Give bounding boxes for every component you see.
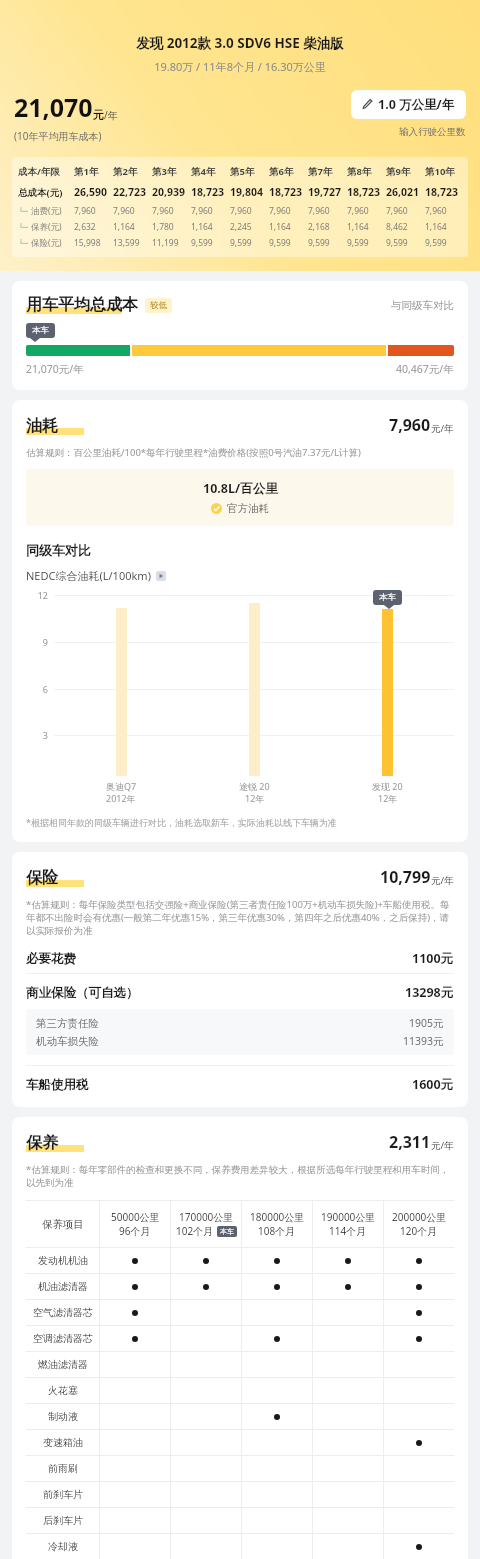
staticText: 7,960: [347, 205, 369, 217]
staticText: 7,960: [74, 205, 96, 217]
staticText: 26,590: [74, 185, 108, 199]
staticText: 总成本(元): [18, 186, 63, 199]
staticText: 6: [26, 683, 48, 695]
staticText: 与同级车对比: [391, 299, 454, 312]
staticText: 7,960: [191, 205, 213, 217]
staticText: 发现 20: [372, 780, 403, 792]
staticText: 前雨刷: [48, 1462, 78, 1475]
staticText: 2,311: [389, 1131, 431, 1153]
staticText: 170000公里: [179, 1210, 234, 1224]
staticText: 40,467元/年: [396, 362, 454, 376]
staticText: 7,960: [425, 205, 447, 217]
staticText: 1905元: [409, 1016, 444, 1030]
staticText: 油耗: [26, 416, 58, 436]
staticText: 21,070元/年: [26, 362, 84, 376]
staticText: 元/年: [431, 422, 454, 435]
staticText: 11,199: [152, 237, 179, 249]
staticText: 19,727: [308, 185, 342, 199]
staticText: 机油滤清器: [38, 1280, 88, 1293]
staticText: 10.8L/百公里: [203, 480, 278, 497]
button[interactable]: 1.0: [351, 90, 466, 119]
staticText: 万公里/年: [399, 96, 455, 113]
staticText: 1,164: [113, 221, 135, 233]
staticText: 120个月: [400, 1224, 438, 1238]
button[interactable]: 说明: [156, 571, 166, 581]
staticText: 7,960: [308, 205, 330, 217]
staticText: 21,070: [14, 90, 93, 124]
staticText: 8,462: [386, 221, 408, 233]
staticText: 必要花费: [26, 951, 76, 967]
staticText: 26,021: [386, 185, 420, 199]
staticText: 9: [26, 636, 48, 648]
staticText: 第9年: [386, 165, 411, 178]
staticText: 12年: [245, 792, 265, 804]
staticText: 9,599: [308, 237, 330, 249]
staticText: (10年平均用车成本): [14, 129, 102, 143]
staticText: 车船使用税: [26, 1077, 89, 1093]
staticText: 保险: [26, 868, 58, 888]
staticText: 第6年: [269, 165, 294, 178]
staticText: *估算规则：每年零部件的检查和更换不同，保养费用差异较大，根据所选每年行驶里程和…: [26, 1163, 454, 1188]
staticText: 18,723: [269, 185, 303, 199]
staticText: 114个月: [329, 1224, 367, 1238]
staticText: 108个月: [258, 1224, 296, 1238]
staticText: 第1年: [74, 165, 99, 178]
staticText: 190000公里: [321, 1210, 376, 1224]
staticText: 发现 2012款 3.0 SDV6 HSE 柴油版: [0, 34, 480, 52]
staticText: 2012年: [106, 792, 136, 804]
staticText: 12年: [378, 792, 398, 804]
staticText: 途锐 20: [239, 780, 270, 792]
staticText: 发动机机油: [38, 1254, 88, 1267]
staticText: 元: [93, 108, 104, 122]
staticText: 7,960: [230, 205, 252, 217]
staticText: 9,599: [347, 237, 369, 249]
staticText: 96个月: [119, 1224, 151, 1238]
staticText: 第10年: [425, 165, 455, 178]
staticText: 1100元: [412, 950, 454, 967]
staticText: 9,599: [386, 237, 408, 249]
staticText: 商业保险（可自选）: [26, 985, 139, 1001]
staticText: *估算规则：每年保险类型包括交强险+商业保险(第三者责任险100万+机动车损失险…: [26, 898, 454, 936]
staticText: 第7年: [308, 165, 333, 178]
staticText: 11393元: [403, 1034, 444, 1048]
staticText: 18,723: [191, 185, 225, 199]
staticText: 180000公里: [250, 1210, 305, 1224]
staticText: 奥迪Q7: [106, 780, 137, 792]
button[interactable]: 必要花费: [26, 950, 454, 967]
staticText: 15,998: [74, 237, 101, 249]
staticText: 制动液: [48, 1410, 78, 1423]
staticText: 保险(元): [31, 237, 62, 249]
staticText: 12: [26, 589, 48, 601]
staticText: 7,960: [113, 205, 135, 217]
staticText: 机动车损失险: [36, 1035, 99, 1048]
staticText: *根据相同年款的同级车辆进行对比，油耗选取新车，实际油耗以线下车辆为准: [26, 816, 337, 828]
button[interactable]: 车船使用税: [26, 1076, 454, 1093]
staticText: 冷却液: [48, 1540, 78, 1553]
staticText: 保养: [26, 1133, 58, 1153]
button[interactable]: 商业保险（可自选）: [26, 984, 454, 1001]
staticText: 第3年: [152, 165, 177, 178]
staticText: 13298元: [405, 984, 454, 1001]
staticText: 2,632: [74, 221, 96, 233]
staticText: 2,168: [308, 221, 330, 233]
staticText: 空调滤清器芯: [33, 1332, 93, 1345]
staticText: 1,164: [425, 221, 447, 233]
staticText: 第5年: [230, 165, 255, 178]
staticText: 18,723: [425, 185, 459, 199]
staticText: 第三方责任险: [36, 1017, 99, 1030]
staticText: 前刹车片: [43, 1488, 83, 1501]
staticText: 后刹车片: [43, 1514, 83, 1527]
staticText: 保养项目: [42, 1218, 84, 1231]
staticText: 油费(元): [31, 205, 62, 217]
staticText: 200000公里: [392, 1210, 447, 1224]
staticText: 用车平均总成本: [26, 295, 138, 315]
staticText: 本车: [379, 592, 396, 603]
staticText: 1,164: [269, 221, 291, 233]
staticText: 18,723: [347, 185, 381, 199]
staticText: 元/年: [431, 874, 454, 887]
staticText: /年: [104, 108, 118, 122]
staticText: 10,799: [380, 866, 431, 888]
staticText: 本车: [220, 1227, 234, 1236]
staticText: 本车: [32, 325, 49, 336]
staticText: 燃油滤清器: [38, 1358, 88, 1371]
